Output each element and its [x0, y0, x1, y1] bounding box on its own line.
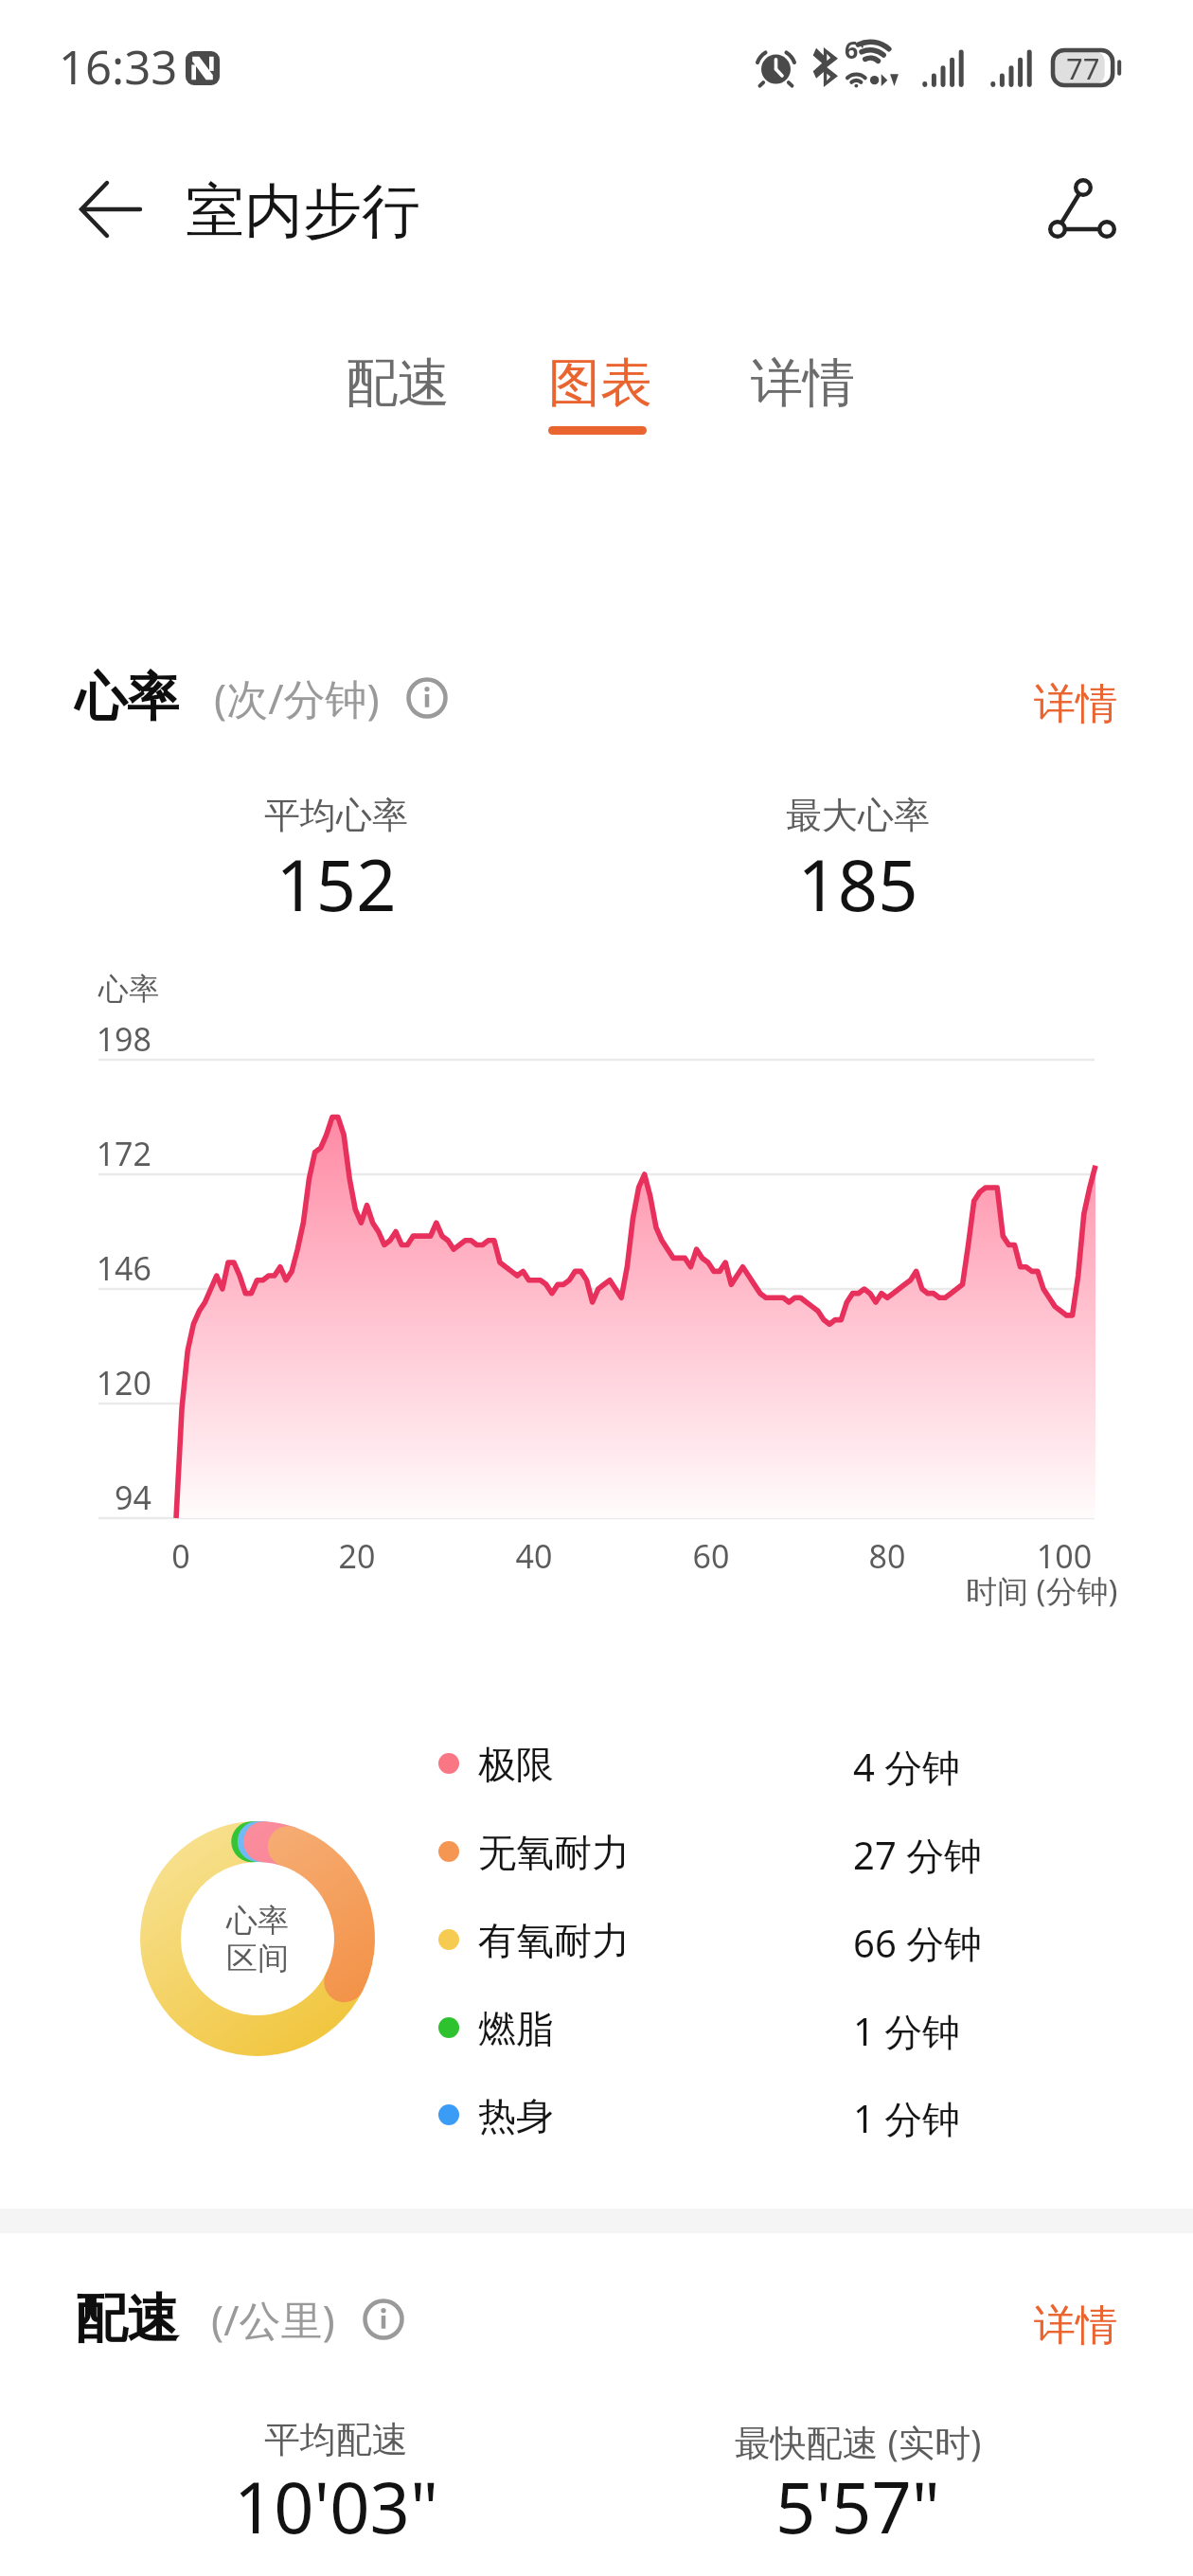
staticText: 4 分钟 — [853, 1741, 961, 1793]
staticText: 室内步行 — [186, 174, 420, 248]
staticText: 0 — [105, 1534, 257, 1578]
staticText: 详情 — [1034, 678, 1117, 730]
staticText: 配速 — [346, 350, 450, 416]
button[interactable]: Share — [1035, 165, 1131, 252]
staticText: 80 — [811, 1534, 963, 1578]
staticText: 185 — [574, 836, 1142, 932]
button[interactable]: 图表 — [510, 331, 688, 445]
staticText: 66 分钟 — [853, 1917, 983, 1969]
button[interactable]: 详情 — [713, 331, 891, 445]
button[interactable]: Back — [59, 170, 150, 254]
staticText: 详情 — [1034, 2299, 1117, 2352]
staticText: 146 — [38, 1246, 151, 1290]
button[interactable]: 有氧耐力 — [417, 1896, 1042, 1983]
staticText: 心率 — [163, 1901, 352, 1941]
button[interactable]: 极限 — [417, 1720, 1042, 1807]
staticText: 燃脂 — [478, 2005, 554, 2052]
staticText: 198 — [38, 1017, 151, 1061]
staticText: 热身 — [478, 2092, 554, 2139]
staticText: 极限 — [478, 1741, 554, 1788]
staticText: 27 分钟 — [853, 1829, 983, 1881]
button[interactable]: 详情 — [1000, 2280, 1151, 2370]
staticText: 1 分钟 — [853, 2092, 961, 2144]
button[interactable]: 热身 — [417, 2071, 1042, 2158]
staticText: 77 — [1066, 48, 1100, 87]
staticText: 最大心率 — [574, 793, 1142, 838]
button[interactable]: 无氧耐力 — [417, 1808, 1042, 1895]
staticText: 5'57" — [574, 2459, 1142, 2554]
staticText: (/公里) — [211, 2291, 335, 2348]
staticText: 100 — [988, 1534, 1140, 1578]
staticText: 详情 — [751, 350, 855, 416]
staticText: 有氧耐力 — [478, 1917, 630, 1964]
staticText: 区间 — [163, 1939, 352, 1978]
staticText: 配速 — [75, 2286, 179, 2352]
staticText: 心率 — [98, 970, 159, 1008]
button[interactable]: 详情 — [1000, 658, 1151, 749]
staticText: 94 — [38, 1476, 151, 1519]
button[interactable]: 燃脂 — [417, 1984, 1042, 2071]
staticText: 20 — [281, 1534, 433, 1578]
staticText: 无氧耐力 — [478, 1829, 630, 1876]
staticText: 图表 — [548, 350, 652, 416]
staticText: 40 — [458, 1534, 610, 1578]
staticText: 1 分钟 — [853, 2005, 961, 2057]
staticText: 172 — [38, 1132, 151, 1175]
staticText: (次/分钟) — [214, 670, 380, 726]
staticText: 152 — [52, 836, 620, 932]
staticText: 6⁺ — [845, 33, 867, 65]
staticText: 平均配速 — [52, 2417, 620, 2462]
staticText: 最快配速 (实时) — [574, 2417, 1142, 2466]
staticText: 平均心率 — [52, 793, 620, 838]
staticText: 心率 — [75, 665, 179, 730]
staticText: 10'03" — [52, 2459, 620, 2554]
staticText: 120 — [38, 1361, 151, 1404]
button[interactable]: 配速 — [308, 331, 486, 445]
staticText: 60 — [635, 1534, 787, 1578]
staticText: 时间 (分钟) — [966, 1569, 1118, 1612]
staticText: 16:33 — [59, 35, 178, 98]
